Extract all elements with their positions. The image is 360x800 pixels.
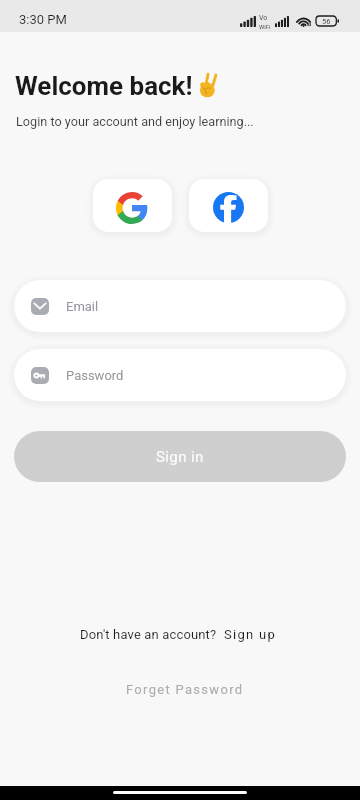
staticText: 3:30 PM [19,12,67,27]
button[interactable]: Password [14,349,346,401]
staticText: Sign up [224,627,277,642]
staticText: WiFi [259,23,271,30]
staticText: Login to your account and enjoy learning… [16,114,254,129]
staticText: Forget Password [126,682,244,697]
staticText: 56 [322,17,331,26]
button[interactable]: Sign in with Google [93,179,172,232]
staticText: Sign in [156,448,204,466]
button[interactable]: Sign in [14,431,346,482]
button[interactable]: Email [14,280,346,332]
staticText: Don't have an account? [80,627,217,642]
staticText: Password [66,368,124,383]
button[interactable]: Forget Password [126,682,244,697]
staticText: Email [66,299,99,314]
staticText: Welcome back! [15,71,193,101]
button[interactable]: Sign in with Facebook [189,179,268,232]
staticText: Vo [259,14,268,22]
button[interactable]: Sign up [224,627,277,642]
